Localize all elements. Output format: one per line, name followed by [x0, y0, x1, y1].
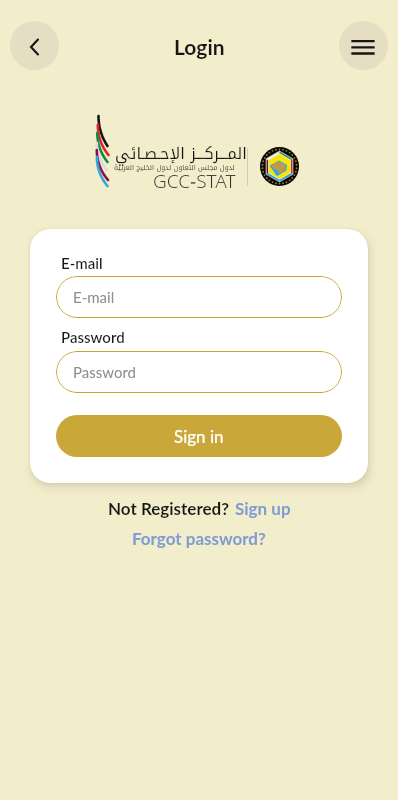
button[interactable]: Sign up [235, 498, 291, 518]
staticText: المـــركـــز الإحـصـائي [115, 138, 247, 168]
staticText: Sign up [235, 498, 291, 518]
button[interactable]: Menu [339, 21, 388, 70]
button[interactable]: Back [10, 21, 59, 70]
staticText: GCC-STAT [153, 168, 236, 194]
staticText: E-mail [61, 254, 103, 272]
staticText: Forgot password? [132, 528, 266, 548]
button[interactable]: Password [56, 351, 342, 393]
staticText: Password [61, 328, 125, 346]
button[interactable]: E-mail [56, 276, 342, 318]
button[interactable]: Sign in [56, 415, 342, 457]
staticText: E-mail [73, 288, 115, 306]
staticText: Login [174, 34, 225, 59]
staticText: Sign in [174, 426, 224, 446]
staticText: لدول مجلس التعاون لدول الخليج العربية [114, 161, 235, 174]
staticText: Password [73, 363, 136, 381]
button[interactable]: Forgot password? [132, 528, 266, 548]
staticText: Not Registered? [108, 498, 230, 518]
